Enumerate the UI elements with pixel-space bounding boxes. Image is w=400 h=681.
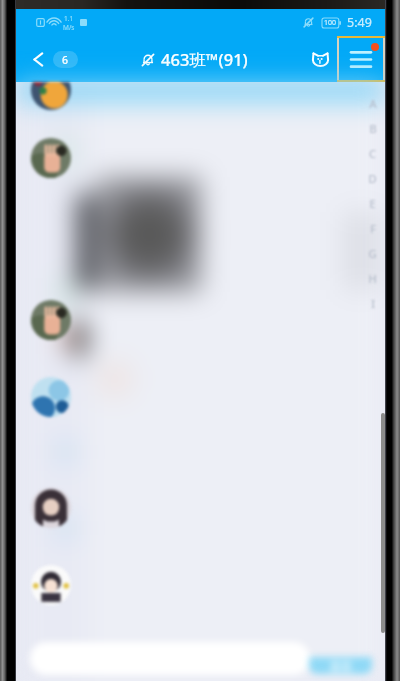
- other: Menu: [351, 51, 371, 68]
- button[interactable]: [30, 642, 310, 675]
- staticText: I: [371, 296, 375, 311]
- staticText: C: [369, 146, 376, 161]
- button[interactable]: [31, 565, 71, 605]
- staticText: 6: [62, 53, 69, 67]
- staticText: A: [369, 96, 377, 111]
- staticText: M/s: [63, 23, 75, 32]
- staticText: B: [369, 121, 377, 136]
- button[interactable]: Back: [16, 51, 86, 68]
- staticText: G: [368, 246, 377, 261]
- button[interactable]: 发送: [309, 657, 372, 674]
- staticText: 463班™(91): [161, 48, 248, 71]
- button[interactable]: [31, 300, 71, 340]
- staticText: 100: [324, 18, 337, 28]
- button[interactable]: [31, 377, 71, 417]
- button[interactable]: Group honor: [303, 42, 337, 76]
- button[interactable]: [31, 70, 71, 110]
- staticText: E: [369, 196, 376, 211]
- staticText: 5:49: [347, 14, 372, 31]
- button[interactable]: [31, 488, 71, 528]
- other: Back: [30, 51, 47, 68]
- button[interactable]: Menu: [337, 36, 385, 82]
- staticText: F: [370, 221, 376, 236]
- staticText: D: [368, 171, 377, 186]
- staticText: 1.1: [64, 14, 74, 23]
- button[interactable]: [31, 138, 71, 178]
- staticText: H: [368, 271, 377, 286]
- staticText: 发送: [330, 659, 352, 673]
